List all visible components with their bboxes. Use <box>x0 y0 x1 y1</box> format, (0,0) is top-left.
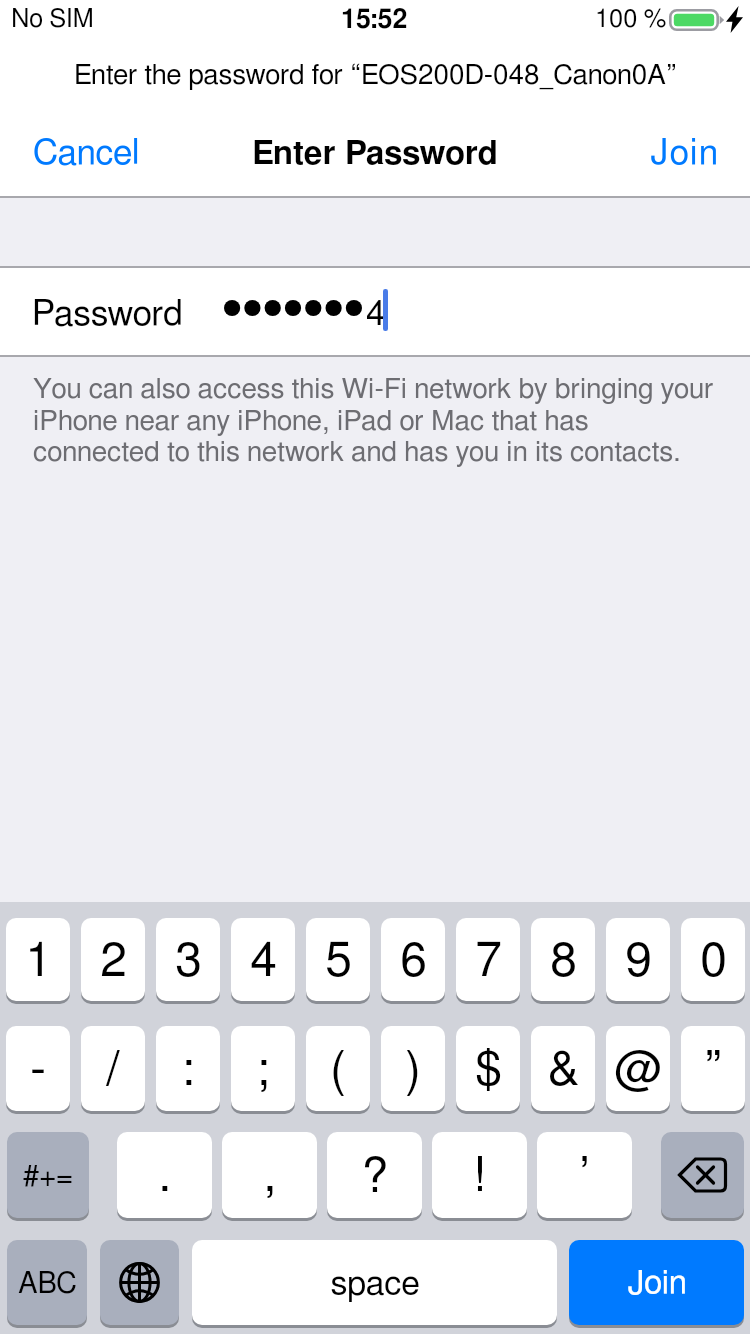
staticText: 7 <box>475 938 502 986</box>
button[interactable]: Cancel <box>0 126 173 181</box>
button[interactable]: ? <box>327 1132 422 1218</box>
button[interactable]: / <box>81 1026 145 1111</box>
button[interactable]: & <box>531 1026 595 1111</box>
staticText: 3 <box>175 938 202 986</box>
button[interactable]: 4 <box>231 918 295 1001</box>
button[interactable]: ’ <box>537 1132 632 1218</box>
button[interactable]: . <box>117 1132 212 1218</box>
button[interactable]: Backspace <box>661 1132 744 1218</box>
staticText: #+= <box>23 1163 73 1192</box>
button[interactable]: ( <box>306 1026 370 1111</box>
staticText: ABC <box>18 1270 77 1299</box>
staticText: 1 <box>25 938 52 986</box>
button[interactable]: 6 <box>381 918 445 1001</box>
button[interactable]: ; <box>231 1026 295 1111</box>
button[interactable]: ) <box>381 1026 445 1111</box>
staticText: 8 <box>550 938 577 986</box>
staticText: 9 <box>625 938 652 986</box>
staticText: ( <box>330 1047 346 1095</box>
button[interactable]: 1 <box>6 918 70 1001</box>
staticText: Join <box>650 136 720 171</box>
staticText: & <box>547 1047 580 1095</box>
button[interactable]: $ <box>456 1026 520 1111</box>
button[interactable]: - <box>6 1026 70 1111</box>
button[interactable]: 5 <box>306 918 370 1001</box>
staticText: 2 <box>100 938 127 986</box>
staticText: 100 % <box>595 7 667 32</box>
button[interactable]: ABC <box>7 1240 87 1325</box>
staticText: ? <box>361 1153 388 1201</box>
staticText: 5 <box>325 938 352 986</box>
button[interactable]: , <box>222 1132 317 1218</box>
staticText: 15:52 <box>341 7 408 34</box>
staticText: ’ <box>578 1153 591 1201</box>
staticText: 4 <box>366 297 386 332</box>
staticText: You can also access this Wi-Fi network b… <box>33 376 720 467</box>
staticText: Enter the password for “EOS200D-048_Cano… <box>74 62 677 90</box>
button[interactable]: 9 <box>606 918 670 1001</box>
staticText: Enter Password <box>252 137 498 170</box>
staticText: / <box>106 1047 120 1095</box>
staticText: ) <box>405 1047 421 1095</box>
staticText: - <box>30 1047 46 1095</box>
button[interactable]: : <box>156 1026 220 1111</box>
staticText: Cancel <box>33 136 140 171</box>
button[interactable]: 7 <box>456 918 520 1001</box>
staticText: @ <box>614 1047 663 1095</box>
staticText: ; <box>257 1047 270 1095</box>
staticText: 4 <box>250 938 277 986</box>
button[interactable]: space <box>192 1240 557 1325</box>
button[interactable]: 2 <box>81 918 145 1001</box>
staticText: space <box>330 1268 420 1302</box>
button[interactable]: ” <box>681 1026 745 1111</box>
staticText: 0 <box>700 938 727 986</box>
staticText: Password <box>32 297 183 332</box>
staticText: No SIM <box>11 7 94 32</box>
staticText: , <box>263 1153 277 1201</box>
button[interactable]: Join <box>569 1240 744 1325</box>
staticText: 6 <box>400 938 427 986</box>
button[interactable]: Change keyboard <box>100 1240 179 1325</box>
staticText: : <box>182 1047 195 1095</box>
button[interactable]: #+= <box>7 1132 89 1218</box>
staticText: Join <box>627 1268 687 1301</box>
staticText: . <box>158 1153 171 1201</box>
staticText: ! <box>472 1153 488 1201</box>
button[interactable]: 8 <box>531 918 595 1001</box>
staticText: ” <box>703 1047 723 1095</box>
button[interactable]: 0 <box>681 918 745 1001</box>
button[interactable]: @ <box>606 1026 670 1111</box>
button[interactable]: Join <box>620 126 750 181</box>
button[interactable]: ! <box>432 1132 527 1218</box>
staticText: $ <box>475 1047 502 1095</box>
button[interactable]: Password <box>0 268 750 355</box>
button[interactable]: 3 <box>156 918 220 1001</box>
